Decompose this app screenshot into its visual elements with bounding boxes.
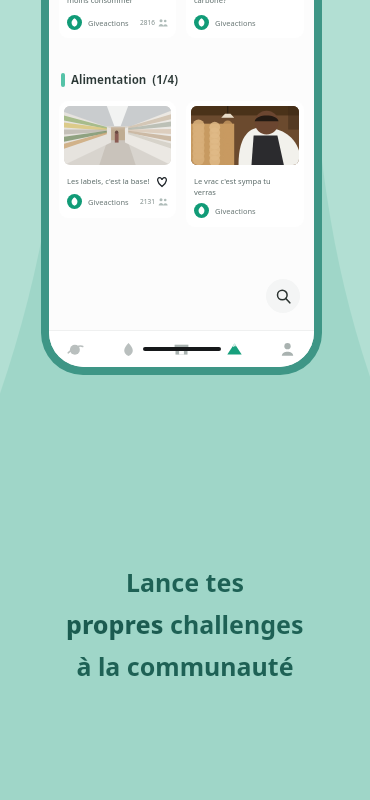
staticText: Quelle est ton empreinte carbone? <box>194 0 296 5</box>
button[interactable]: Montagne <box>208 331 261 367</box>
staticText: à la communauté <box>76 649 294 683</box>
button[interactable]: Profil <box>261 331 314 367</box>
staticText: Giveactions <box>88 197 129 207</box>
staticText: challenges <box>170 607 304 641</box>
button[interactable]: Des ampoules LED pour moins consommer <box>59 0 176 38</box>
staticText: Le vrac c'est sympa tu verras <box>194 176 296 197</box>
button[interactable]: Boutique <box>155 331 208 367</box>
staticText: Giveactions <box>88 18 129 28</box>
staticText: 2131 <box>140 197 155 206</box>
button[interactable]: Eau <box>102 331 155 367</box>
staticText: Des ampoules LED pour moins consommer <box>67 0 152 5</box>
button[interactable]: Le vrac c'est sympa tu verras <box>186 101 304 227</box>
button[interactable]: Quelle est ton empreinte carbone? <box>186 0 304 38</box>
staticText: Les labels, c'est la base! <box>67 176 152 186</box>
staticText: Giveactions <box>215 206 256 216</box>
staticText: 2816 <box>140 18 155 27</box>
staticText: Giveactions <box>215 18 256 28</box>
staticText: propres <box>66 607 170 641</box>
button[interactable]: Rechercher <box>266 279 300 313</box>
staticText: Lance tes <box>126 565 244 599</box>
staticText: Alimentation (1/4) <box>71 72 179 88</box>
button[interactable]: Planète <box>49 331 102 367</box>
button[interactable]: Les labels, c'est la base! <box>59 101 176 218</box>
button[interactable]: Favori <box>156 176 168 188</box>
